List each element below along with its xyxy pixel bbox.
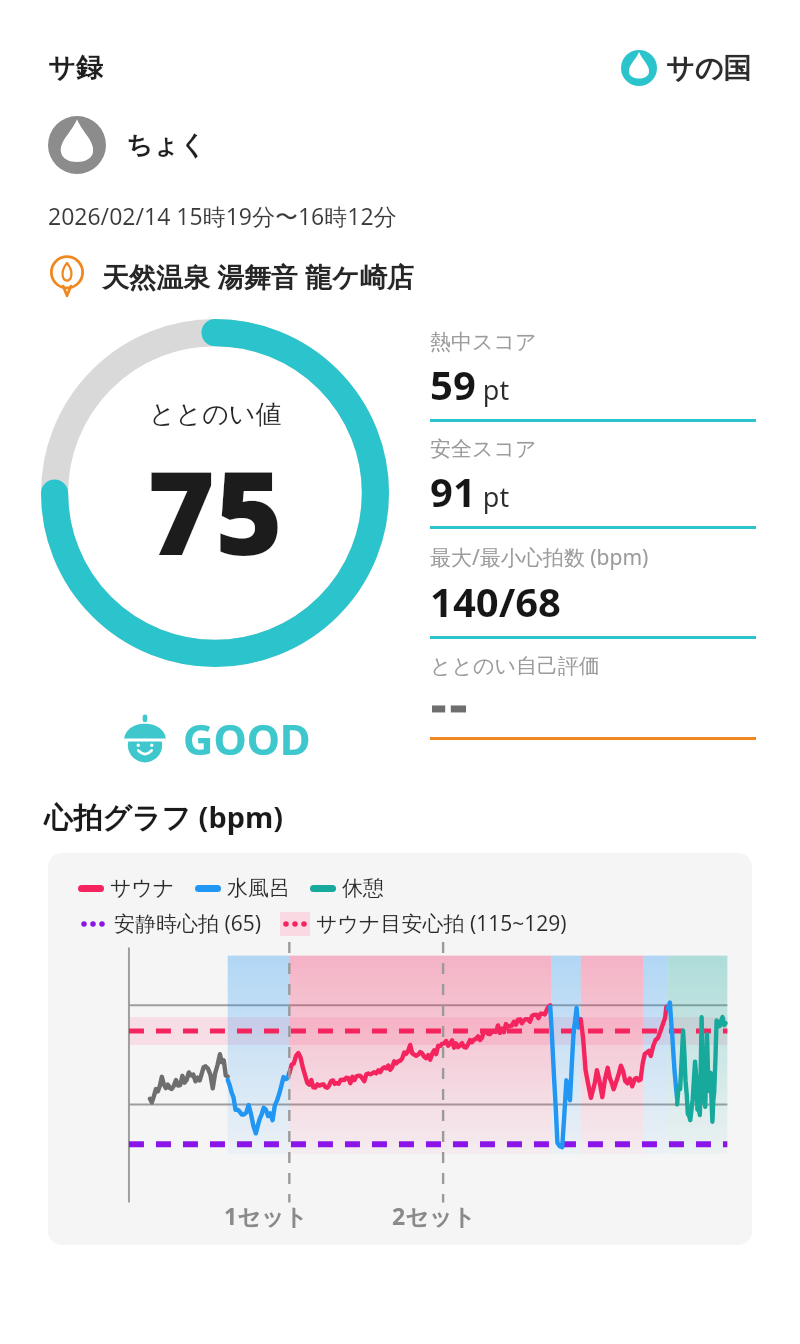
staticText: 140/68: [430, 574, 561, 628]
staticText: 心拍グラフ (bpm): [44, 797, 284, 837]
staticText: 1セット: [224, 1200, 308, 1231]
staticText: 水風呂: [227, 875, 290, 901]
staticText: 安静時心拍 (65): [114, 909, 262, 938]
button[interactable]: サの国: [621, 50, 752, 86]
staticText: 休憩: [342, 875, 384, 901]
staticText: サウナ: [110, 875, 175, 901]
staticText: GOOD: [183, 710, 311, 767]
staticText: 最大/最小心拍数 (bpm): [430, 543, 649, 572]
staticText: ととのい値: [149, 398, 282, 431]
staticText: 2026/02/14 15時19分〜16時12分: [48, 200, 397, 231]
other: Sauna venue: [44, 253, 90, 299]
button[interactable]: Sauna venue: [44, 253, 756, 299]
staticText: サの国: [666, 51, 752, 86]
button[interactable]: 安全スコア: [430, 422, 756, 529]
staticText: 2セット: [392, 1200, 476, 1231]
staticText: ちょく: [126, 129, 206, 162]
button[interactable]: 最大/最小心拍数 (bpm): [430, 529, 756, 639]
staticText: サ録: [48, 51, 103, 85]
button[interactable]: ととのい自己評価: [430, 639, 756, 740]
button[interactable]: GOOD: [119, 710, 311, 767]
staticText: サウナ目安心拍 (115~129): [316, 909, 567, 938]
other: GOOD: [119, 713, 171, 765]
staticText: 安全スコア: [430, 436, 537, 462]
staticText: 熱中スコア: [430, 329, 537, 355]
staticText: 天然温泉 湯舞音 龍ケ崎店: [102, 258, 414, 295]
button[interactable]: 熱中スコア: [430, 315, 756, 422]
staticText: 91 pt: [430, 464, 510, 518]
staticText: 59 pt: [430, 357, 510, 411]
staticText: ととのい自己評価: [430, 653, 600, 679]
button[interactable]: ちょく: [48, 116, 752, 174]
staticText: 75: [147, 431, 283, 589]
